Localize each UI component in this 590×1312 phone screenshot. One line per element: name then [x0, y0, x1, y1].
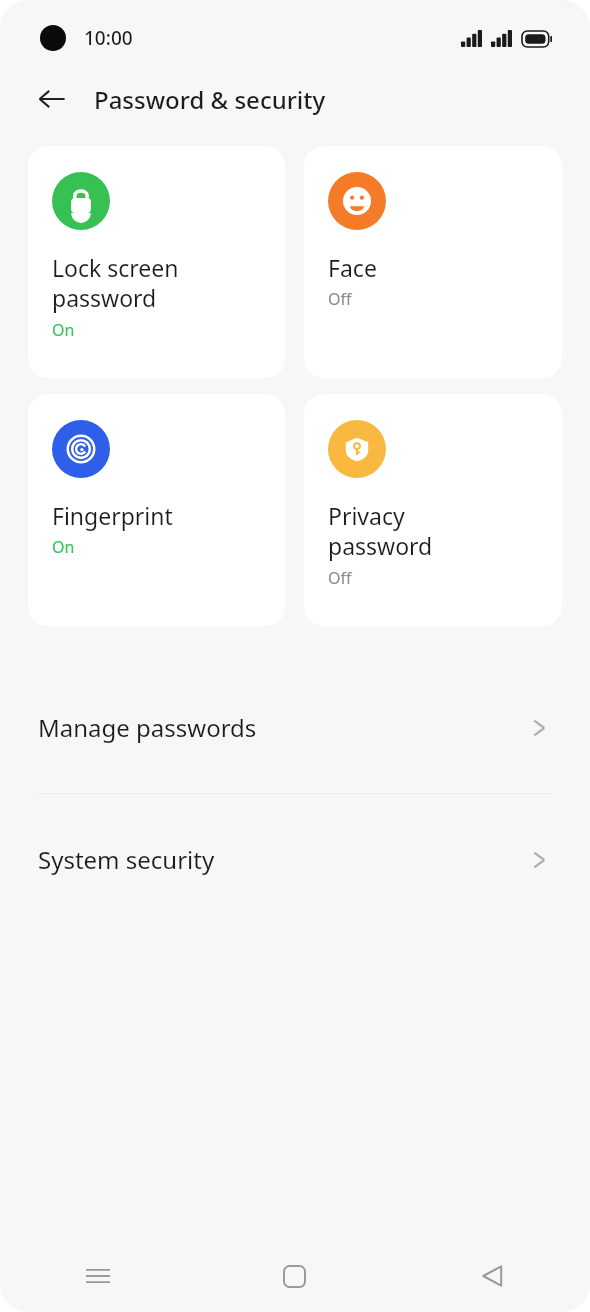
staticText: On	[52, 536, 75, 558]
button[interactable]: Fingerprint	[28, 394, 285, 626]
button[interactable]: Manage passwords	[0, 662, 590, 793]
staticText: 10:00	[84, 25, 133, 51]
button[interactable]: Face	[304, 146, 562, 378]
staticText: Off	[328, 567, 352, 589]
button[interactable]: Privacy password	[304, 394, 562, 626]
staticText: Face	[328, 252, 377, 283]
staticText: System security	[38, 843, 215, 876]
button[interactable]: Back	[393, 1240, 590, 1312]
button[interactable]: System security	[0, 794, 590, 925]
button[interactable]: Back	[26, 73, 78, 125]
staticText: Privacy password	[328, 500, 433, 562]
button[interactable]: Home	[196, 1240, 393, 1312]
button[interactable]: Recent apps	[0, 1240, 196, 1312]
staticText: Manage passwords	[38, 711, 257, 744]
staticText: Fingerprint	[52, 500, 173, 531]
staticText: Off	[328, 288, 352, 310]
staticText: On	[52, 319, 75, 341]
staticText: Password & security	[94, 83, 326, 116]
staticText: Lock screen password	[52, 252, 179, 314]
button[interactable]: Lock screen password	[28, 146, 285, 378]
